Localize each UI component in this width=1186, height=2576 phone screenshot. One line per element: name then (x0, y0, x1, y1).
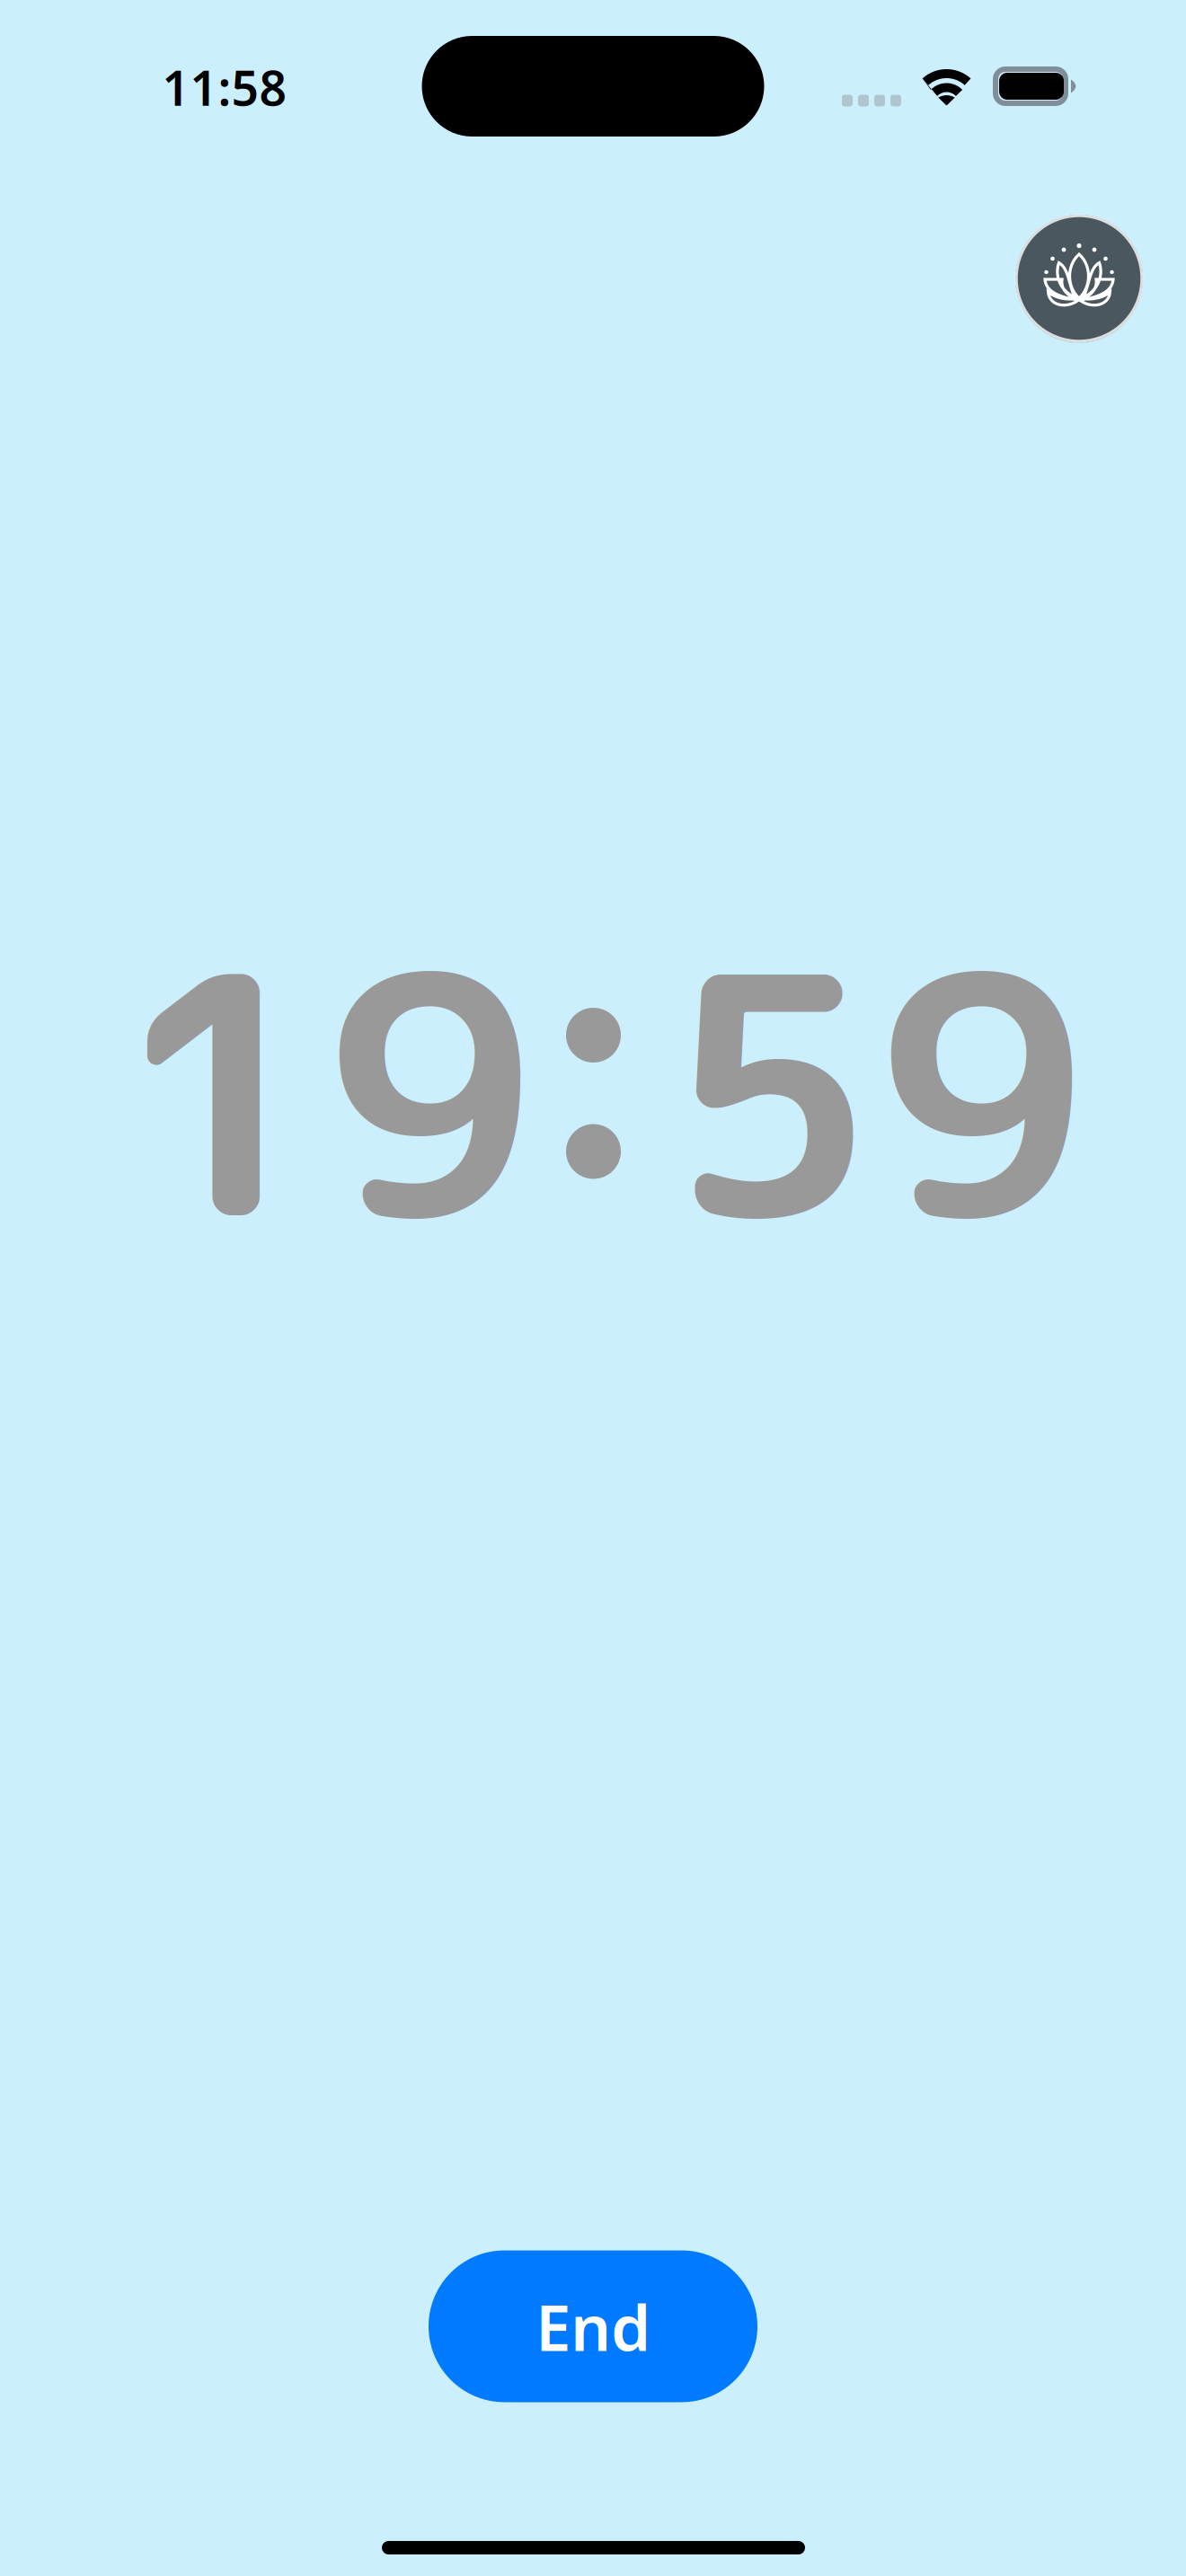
staticText: End (535, 2284, 651, 2368)
staticText: 59 (665, 860, 1089, 1321)
button[interactable]: End (429, 2250, 757, 2402)
staticText: 19 (113, 860, 537, 1321)
staticText: 11:58 (162, 55, 287, 119)
button[interactable]: Ambient sound (1012, 211, 1146, 346)
